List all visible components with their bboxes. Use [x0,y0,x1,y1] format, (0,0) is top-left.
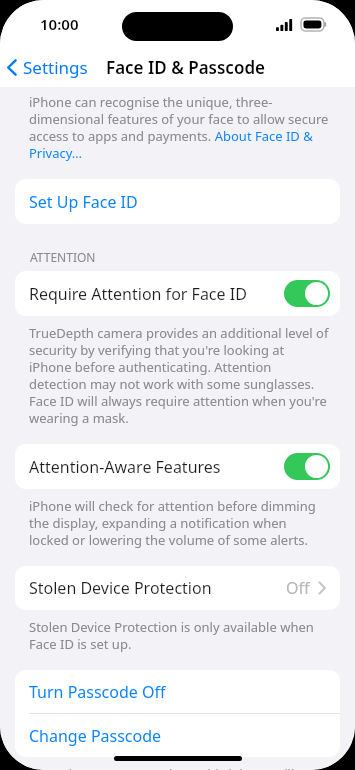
staticText: Stolen Device Protection is only availab… [29,618,329,653]
staticText: 10:00 [40,14,79,34]
button[interactable]: Set Up Face ID [15,179,340,224]
staticText: Settings [23,56,88,79]
button[interactable]: Change Passcode [15,714,340,757]
button[interactable]: Turn Passcode Off [15,670,340,713]
staticText: ATTENTION [30,249,96,265]
staticText: iPhone can recognise the unique, three-d… [29,93,333,162]
button[interactable]: Toggle [284,280,330,307]
button[interactable]: Settings [0,52,94,83]
staticText: Face ID & Passcode [106,56,265,79]
staticText: Attention-Aware Features [29,456,284,478]
staticText: TrueDepth camera provides an additional … [29,324,329,427]
staticText: iPhone will check for attention before d… [29,497,329,549]
staticText: Set Up Face ID [29,191,138,213]
button[interactable]: Toggle [284,453,330,480]
staticText: Require Attention for Face ID [29,283,284,305]
staticText: Turn Passcode Off [29,681,166,703]
button[interactable]: Attention-Aware Features [15,444,340,489]
staticText: Off [286,577,310,599]
staticText: Stolen Device Protection [29,577,286,599]
staticText: Changing your passcode on this iPhone wi… [29,765,329,770]
button[interactable]: Stolen Device Protection [15,566,340,610]
button[interactable]: Require Attention for Face ID [15,271,340,316]
staticText: Change Passcode [29,725,162,747]
